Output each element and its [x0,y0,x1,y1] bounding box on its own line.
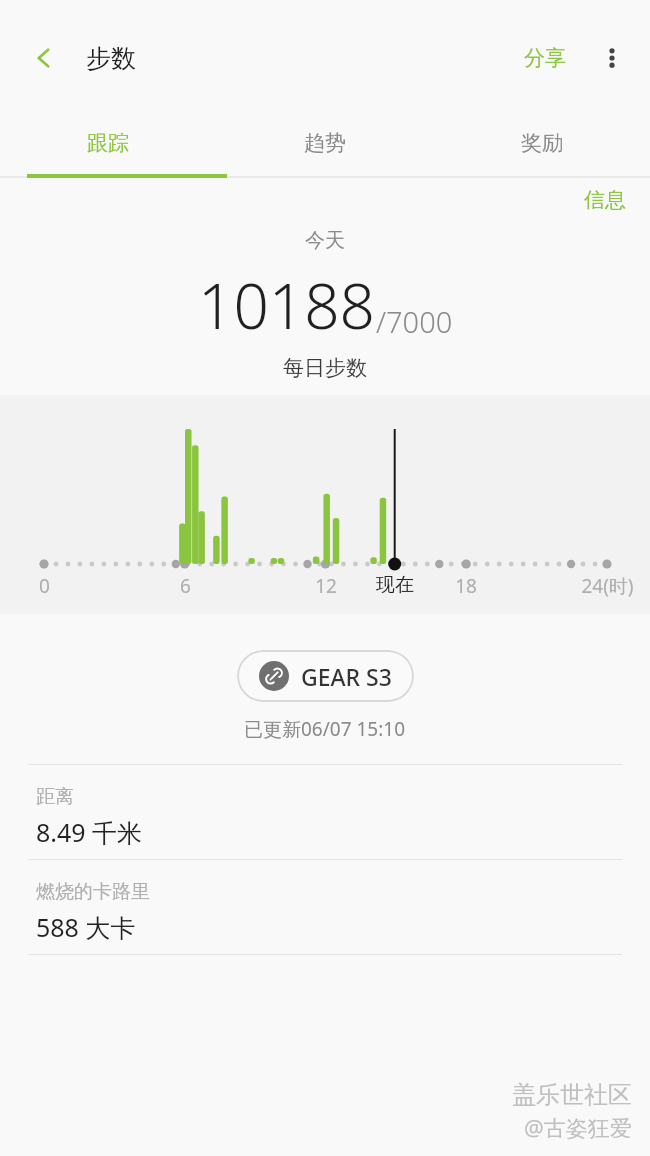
staticText: 24(时) [581,573,634,599]
button[interactable]: 燃烧的卡路里 [0,860,650,954]
staticText: 步数 [86,43,136,74]
staticText: 8.49 千米 [36,815,143,849]
button[interactable]: GEAR S3 [237,650,414,702]
staticText: GEAR S3 [301,661,392,692]
staticText: 12 [315,573,337,599]
staticText: 10188 [198,263,376,347]
staticText: @古姿狂爱 [524,1112,632,1142]
button[interactable]: 信息 [574,181,636,219]
staticText: 每日步数 [283,355,367,381]
staticText: 盖乐世社区 [512,1080,632,1110]
staticText: 现在 [376,573,414,597]
staticText: 趋势 [304,130,346,156]
staticText: 分享 [524,45,566,71]
staticText: 0 [39,573,50,599]
staticText: 信息 [584,187,626,213]
staticText: /7000 [376,302,453,341]
button[interactable]: 趋势 [216,116,433,178]
staticText: 588 大卡 [36,910,136,944]
button[interactable]: 跟踪 [0,116,216,178]
button[interactable]: Back [18,32,70,84]
button[interactable]: More options [588,34,636,82]
staticText: 已更新06/07 15:10 [244,716,406,742]
staticText: 距离 [36,785,74,809]
button[interactable]: 分享 [516,35,574,81]
staticText: 跟踪 [87,130,129,156]
staticText: 6 [180,573,191,599]
button[interactable]: 奖励 [433,116,650,178]
staticText: 奖励 [521,130,563,156]
button[interactable]: 距离 [0,765,650,859]
staticText: 18 [455,573,477,599]
staticText: 今天 [305,228,345,253]
staticText: 燃烧的卡路里 [36,880,150,904]
